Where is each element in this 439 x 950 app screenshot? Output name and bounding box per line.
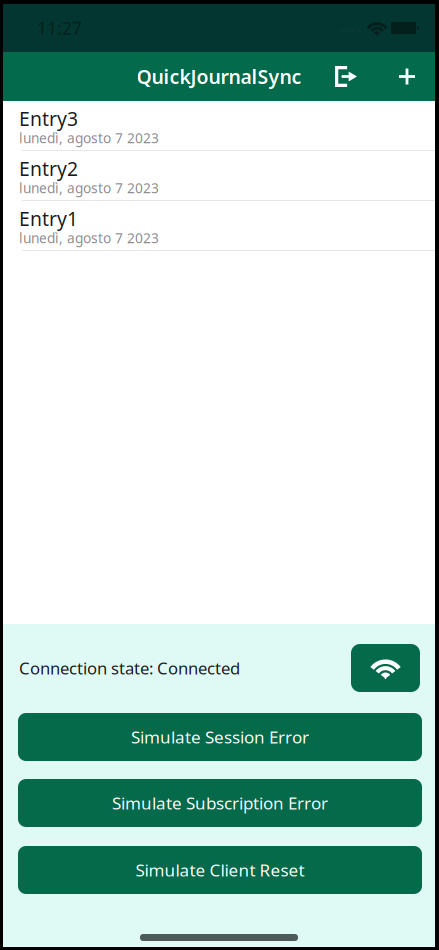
button[interactable]: New entry	[385, 52, 429, 101]
button[interactable]: Log out	[324, 52, 368, 101]
button[interactable]: Entry1	[3, 201, 435, 250]
staticText: Simulate Subscription Error	[112, 792, 328, 814]
button[interactable]: Simulate Session Error	[18, 713, 422, 761]
staticText: 11:27	[37, 16, 82, 39]
staticText: Entry2	[19, 156, 78, 181]
staticText: Entry1	[19, 206, 78, 231]
staticText: Simulate Session Error	[131, 726, 309, 748]
staticText: lunedì, agosto 7 2023	[19, 229, 159, 247]
staticText: Simulate Client Reset	[135, 859, 304, 881]
staticText: lunedì, agosto 7 2023	[19, 179, 159, 197]
staticText: Entry3	[19, 106, 78, 131]
staticText: lunedì, agosto 7 2023	[19, 129, 159, 147]
button[interactable]: Entry2	[3, 151, 435, 200]
button[interactable]: Simulate Client Reset	[18, 846, 422, 894]
staticText: QuickJournalSync	[136, 64, 301, 89]
staticText: Connection state: Connected	[19, 657, 240, 679]
button[interactable]: Entry3	[3, 101, 435, 150]
button[interactable]: Connection status	[351, 644, 420, 692]
button[interactable]: Simulate Subscription Error	[18, 779, 422, 827]
